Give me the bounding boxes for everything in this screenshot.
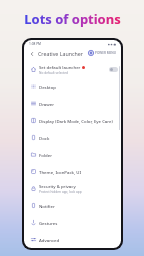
staticText: Desktop <box>39 84 57 90</box>
button[interactable]: Advanced <box>24 231 121 248</box>
staticText: Set default launcher <box>39 64 81 70</box>
button[interactable]: Back <box>27 49 36 58</box>
staticText: No default selected <box>39 71 68 75</box>
staticText: Dock <box>39 135 50 141</box>
button[interactable]: Set default launcher <box>24 61 121 78</box>
button[interactable]: Display (Dark Mode, Color, Eye Care) <box>24 112 121 129</box>
button[interactable]: Security & privacy <box>24 180 121 197</box>
staticText: Protect hidden app, lock app <box>39 190 82 194</box>
staticText: Display (Dark Mode, Color, Eye Care) <box>39 118 113 124</box>
staticText: Security & privacy <box>39 183 76 189</box>
button[interactable]: Folder <box>24 146 121 163</box>
staticText: Notifier <box>39 203 55 209</box>
button[interactable]: Set default launcher toggle <box>109 67 118 72</box>
staticText: Theme, IconPack, UI <box>39 169 81 175</box>
button[interactable]: Desktop <box>24 78 121 95</box>
staticText: 1:08 PM <box>29 42 42 46</box>
button[interactable]: Gestures <box>24 214 121 231</box>
button[interactable]: POWER MENU <box>88 50 118 56</box>
staticText: Folder <box>39 152 53 158</box>
staticText: Advanced <box>39 237 60 243</box>
staticText: Lots of options <box>24 10 121 28</box>
button[interactable]: Drawer <box>24 95 121 112</box>
button[interactable]: Dock <box>24 129 121 146</box>
staticText: Drawer <box>39 101 55 107</box>
button[interactable]: Notifier <box>24 197 121 214</box>
staticText: Gestures <box>39 220 58 226</box>
button[interactable]: Theme, IconPack, UI <box>24 163 121 180</box>
staticText: Creative Launcher <box>38 50 84 57</box>
staticText: POWER MENU <box>95 51 116 55</box>
